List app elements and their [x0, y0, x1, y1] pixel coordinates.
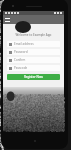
button[interactable]: Email address	[7, 41, 60, 47]
staticText: Passcode	[14, 66, 28, 70]
button[interactable]: Confirm	[7, 57, 60, 63]
staticText: Confirm	[14, 58, 26, 62]
button[interactable]: Register Now	[7, 74, 60, 80]
staticText: Welcome to Example App	[11, 33, 56, 37]
button[interactable]: Password	[7, 49, 60, 55]
button[interactable]: Menu	[5, 17, 11, 23]
staticText: Register Now	[24, 75, 43, 79]
staticText: Email address	[14, 42, 34, 46]
staticText: Password	[14, 50, 28, 54]
button[interactable]: Passcode	[7, 65, 60, 71]
